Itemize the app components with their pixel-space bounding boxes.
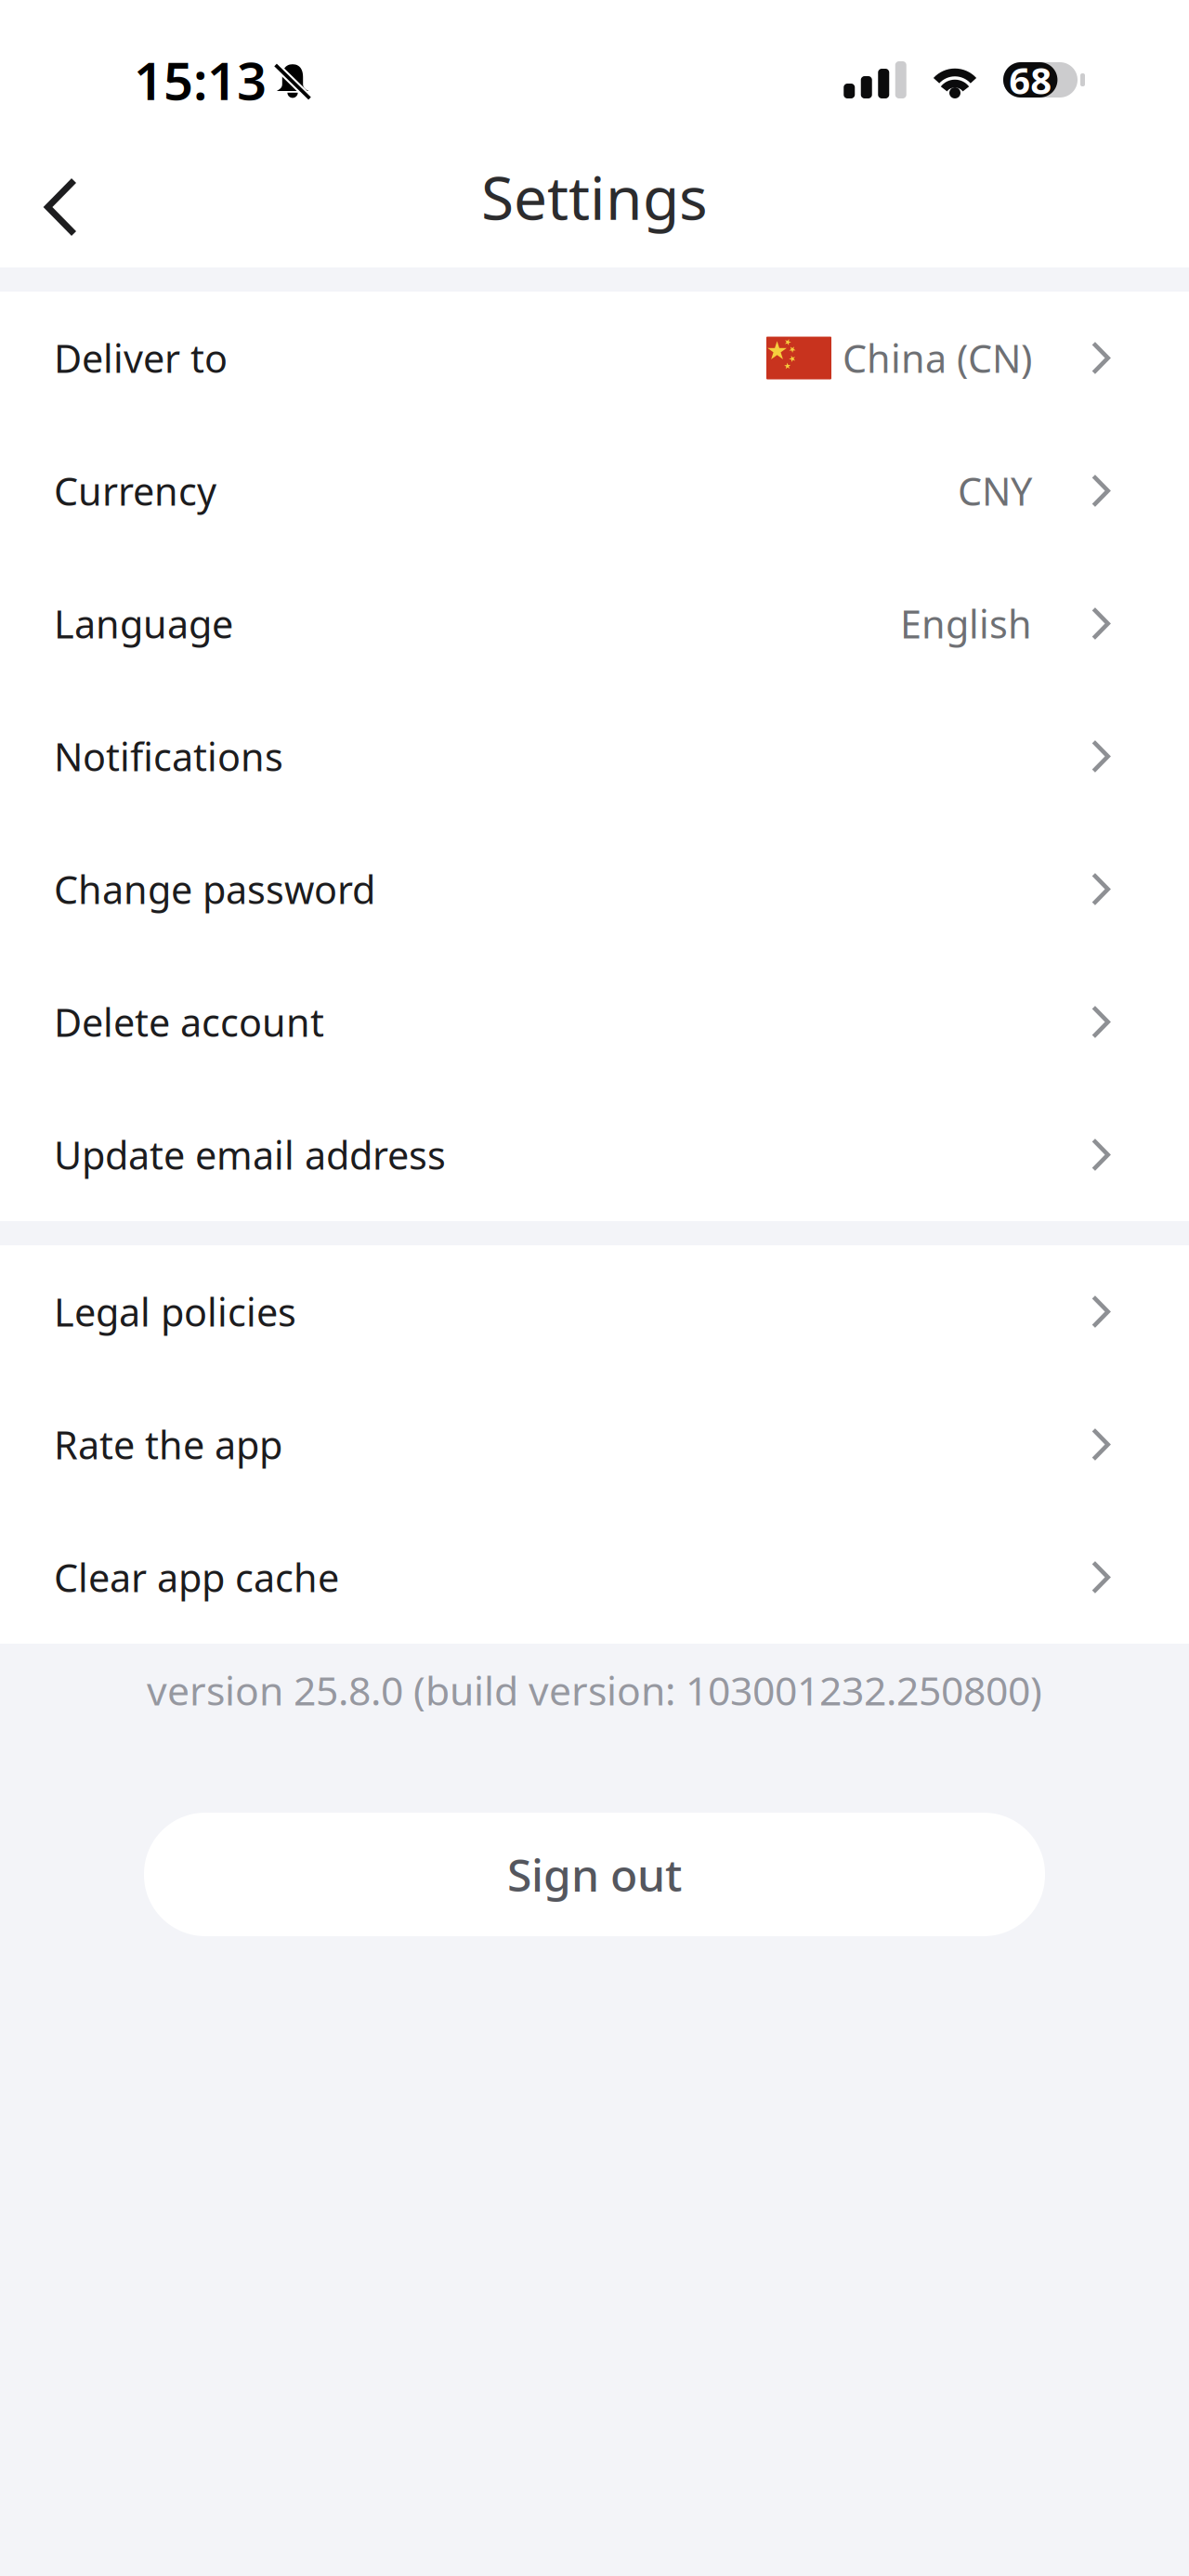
staticText: English <box>900 598 1032 649</box>
staticText: CNY <box>958 465 1032 516</box>
staticText: Settings <box>481 157 708 236</box>
staticText: Deliver to <box>54 333 228 384</box>
button[interactable]: Currency <box>0 424 1189 557</box>
button[interactable]: Language <box>0 557 1189 690</box>
staticText: Notifications <box>54 731 283 782</box>
staticText: Clear app cache <box>54 1552 339 1603</box>
staticText: Rate the app <box>54 1419 282 1470</box>
staticText: Update email address <box>54 1129 446 1180</box>
staticText: Language <box>54 598 233 649</box>
staticText: Currency <box>54 465 216 516</box>
staticText: version 25.8.0 (build version: 103001232… <box>147 1664 1042 1716</box>
button[interactable]: Legal policies <box>0 1245 1189 1378</box>
button[interactable]: Rate the app <box>0 1378 1189 1511</box>
button[interactable]: Back <box>0 140 109 257</box>
staticText: Change password <box>54 864 375 915</box>
staticText: Sign out <box>507 1845 682 1904</box>
button[interactable]: Sign out <box>144 1813 1045 1936</box>
staticText: 68 <box>1009 55 1052 104</box>
staticText: 15:13 <box>134 45 267 114</box>
button[interactable]: Notifications <box>0 690 1189 823</box>
staticText: Delete account <box>54 997 324 1047</box>
button[interactable]: Clear app cache <box>0 1511 1189 1644</box>
staticText: China (CN) <box>843 333 1032 384</box>
button[interactable]: Deliver to <box>0 292 1189 424</box>
button[interactable]: Delete account <box>0 956 1189 1088</box>
staticText: Legal policies <box>54 1286 296 1337</box>
button[interactable]: Change password <box>0 823 1189 956</box>
button[interactable]: Update email address <box>0 1088 1189 1221</box>
